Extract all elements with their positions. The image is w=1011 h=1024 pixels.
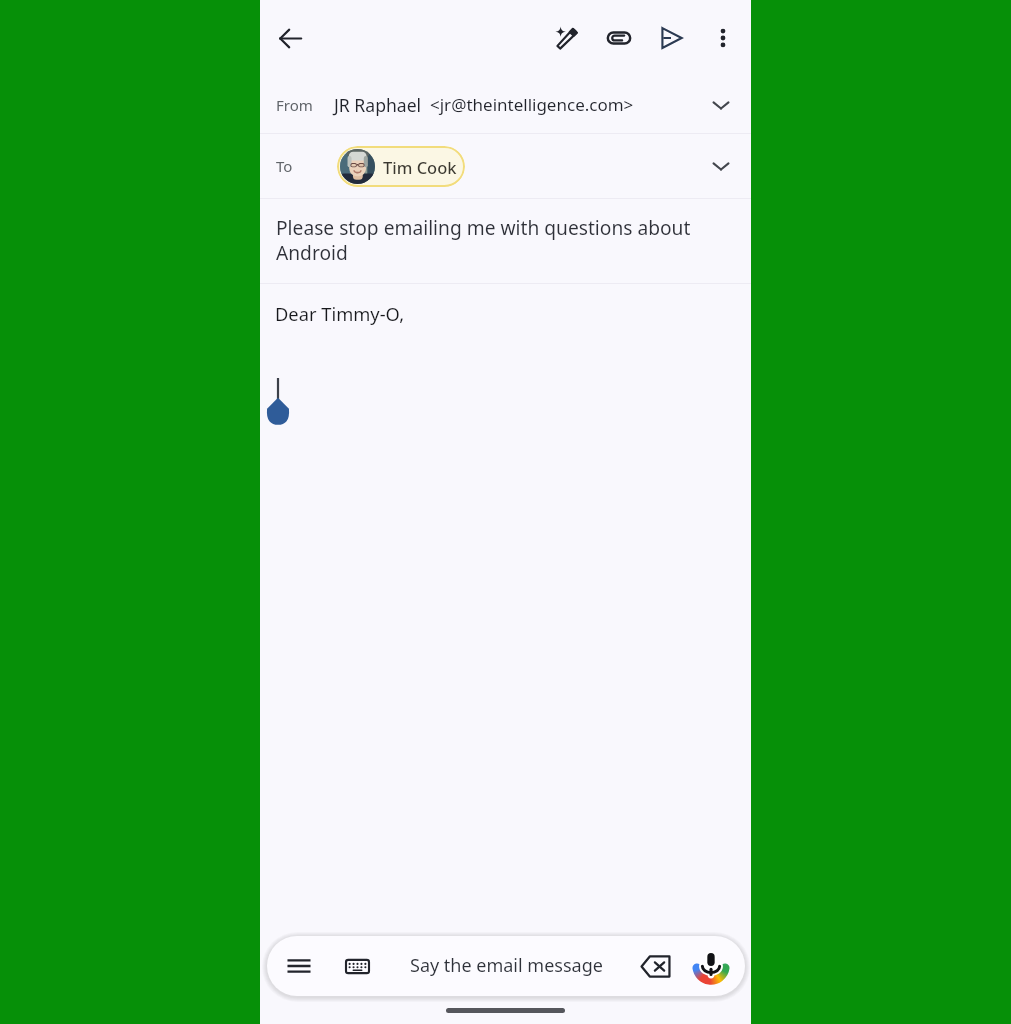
button[interactable]: To <box>260 134 751 198</box>
staticText: Dear Timmy-O, <box>275 301 405 326</box>
button[interactable]: Menu <box>275 942 323 990</box>
button[interactable]: Keyboard <box>333 942 381 990</box>
button[interactable]: From <box>260 76 751 133</box>
staticText: Say the email message <box>410 953 603 978</box>
staticText: JR Raphael <box>334 93 422 117</box>
staticText: To <box>276 156 293 176</box>
button[interactable]: More options <box>699 14 747 62</box>
button[interactable]: Attach file <box>595 14 643 62</box>
button[interactable]: Compose with AI <box>543 14 591 62</box>
button[interactable]: Backspace <box>631 942 679 990</box>
staticText: Please stop emailing me with questions a… <box>276 214 731 266</box>
button[interactable]: Tim Cook <box>337 146 465 187</box>
button[interactable]: Back <box>266 14 314 62</box>
button[interactable]: Expand recipients <box>699 144 743 188</box>
button[interactable]: Please stop emailing me with questions a… <box>260 199 751 283</box>
staticText: Tim Cook <box>383 156 457 178</box>
staticText: From <box>276 95 313 115</box>
button[interactable]: Expand From <box>699 83 743 127</box>
staticText: <jr@theintelligence.com> <box>430 93 634 116</box>
button[interactable]: Send <box>647 14 695 62</box>
button[interactable]: Dear Timmy-O, <box>260 284 751 1024</box>
button[interactable]: Voice input <box>687 942 735 990</box>
